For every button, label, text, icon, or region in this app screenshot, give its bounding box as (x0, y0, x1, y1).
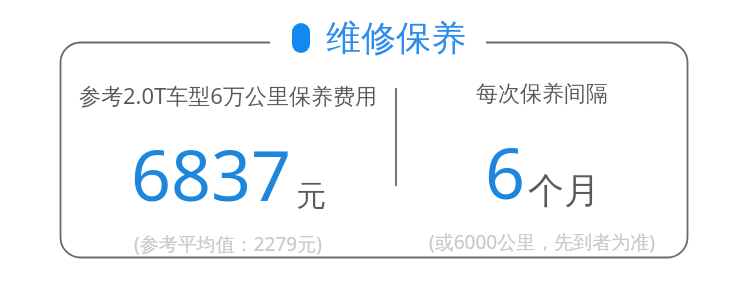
staticText: 维修保养 (326, 16, 466, 60)
button[interactable]: 参考2.0T车型6万公里保养费用 (60, 80, 396, 257)
button[interactable]: 每次保养间隔 (396, 80, 688, 255)
staticText: 每次保养间隔 (476, 80, 608, 108)
staticText: 元 (296, 177, 326, 215)
staticText: (或6000公里，先到者为准) (429, 229, 655, 255)
staticText: 6837 (131, 126, 292, 221)
staticText: (参考平均值：2279元) (134, 231, 322, 257)
staticText: 6 (485, 124, 526, 219)
staticText: 参考2.0T车型6万公里保养费用 (79, 80, 377, 110)
other: Maintenance section marker (292, 23, 310, 53)
staticText: 个月 (528, 168, 600, 213)
button[interactable]: Maintenance section marker (292, 16, 466, 60)
